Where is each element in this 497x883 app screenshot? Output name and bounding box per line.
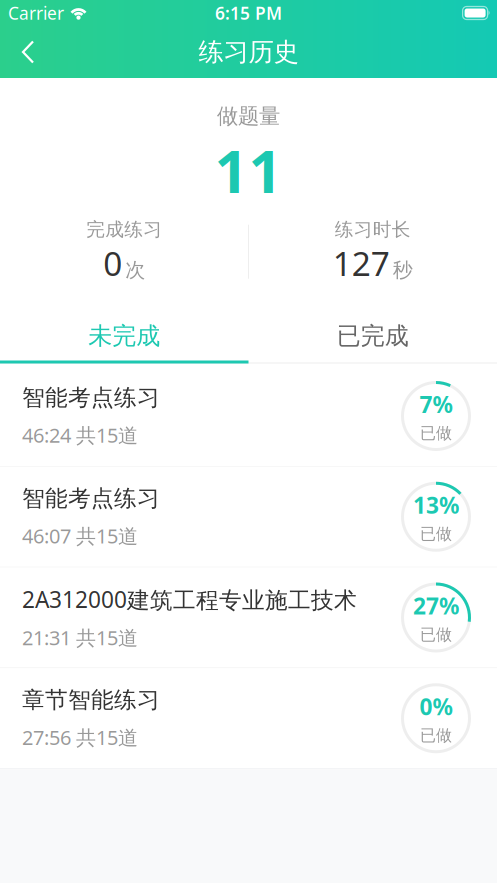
staticText: 秒 — [393, 258, 413, 282]
staticText: 127 — [333, 241, 390, 285]
staticText: 已做 — [420, 423, 452, 443]
staticText: 0% — [419, 691, 452, 721]
staticText: 已做 — [420, 725, 452, 745]
staticText: 21:31 共15道 — [22, 624, 138, 651]
staticText: 已完成 — [337, 321, 409, 351]
staticText: 未完成 — [88, 321, 160, 351]
button[interactable]: Back — [0, 34, 35, 69]
staticText: 11 — [214, 131, 282, 209]
staticText: 完成练习 — [86, 218, 162, 241]
staticText: 练习时长 — [335, 218, 411, 241]
staticText: 27:56 共15道 — [22, 724, 138, 750]
button[interactable]: 智能考点练习 — [0, 467, 497, 567]
staticText: 27% — [413, 591, 459, 621]
staticText: 章节智能练习 — [22, 686, 160, 714]
staticText: 2A312000建筑工程专业施工技术 — [22, 584, 357, 614]
staticText: 做题量 — [217, 103, 280, 129]
staticText: 46:07 共15道 — [22, 522, 138, 549]
staticText: 已做 — [420, 524, 452, 544]
button[interactable]: 已完成 — [248, 301, 497, 363]
staticText: 练习历史 — [198, 36, 298, 67]
button[interactable]: 2A312000建筑工程专业施工技术 — [0, 567, 497, 667]
staticText: 46:24 共15道 — [22, 422, 138, 448]
button[interactable]: 未完成 — [0, 301, 248, 363]
staticText: 0 — [103, 241, 122, 285]
staticText: 6:15 PM — [215, 1, 282, 24]
staticText: 智能考点练习 — [22, 484, 160, 512]
staticText: 7% — [419, 389, 452, 419]
button[interactable]: 章节智能练习 — [0, 668, 497, 768]
staticText: Carrier — [8, 1, 64, 24]
button[interactable]: 智能考点练习 — [0, 366, 497, 466]
staticText: 已做 — [420, 625, 452, 644]
staticText: 次 — [125, 258, 145, 282]
staticText: 13% — [413, 490, 459, 520]
staticText: 智能考点练习 — [22, 384, 160, 412]
